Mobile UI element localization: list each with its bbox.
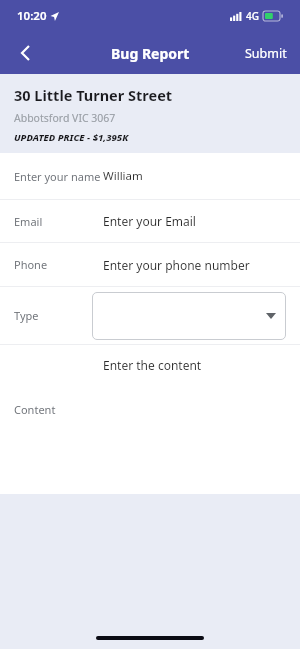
staticText: Enter your name (14, 169, 101, 184)
staticText: Enter your phone number (103, 257, 250, 273)
button[interactable]: Enter your name (0, 153, 300, 199)
button[interactable]: Back (6, 34, 44, 72)
staticText: 30 Little Turner Street (14, 85, 173, 105)
button[interactable]: Email (0, 200, 300, 242)
staticText: Bug Report (111, 44, 190, 63)
staticText: Email (14, 214, 43, 229)
staticText: Abbotsford VIC 3067 (14, 111, 116, 125)
staticText: 4G (246, 9, 259, 23)
staticText: Phone (14, 257, 48, 272)
button[interactable]: Type (0, 287, 300, 344)
button[interactable]: Enter the content (0, 345, 300, 385)
staticText: Enter the content (103, 357, 202, 373)
staticText: Submit (245, 45, 287, 62)
staticText: Content (14, 402, 56, 417)
staticText: Type (14, 308, 39, 323)
staticText: 10:20 (17, 8, 47, 24)
staticText: UPDATED PRICE - $1,395K (14, 131, 129, 144)
staticText: William (103, 168, 143, 184)
button[interactable]: Phone (0, 243, 300, 286)
button[interactable]: Submit (232, 36, 300, 71)
staticText: Enter your Email (103, 213, 196, 229)
